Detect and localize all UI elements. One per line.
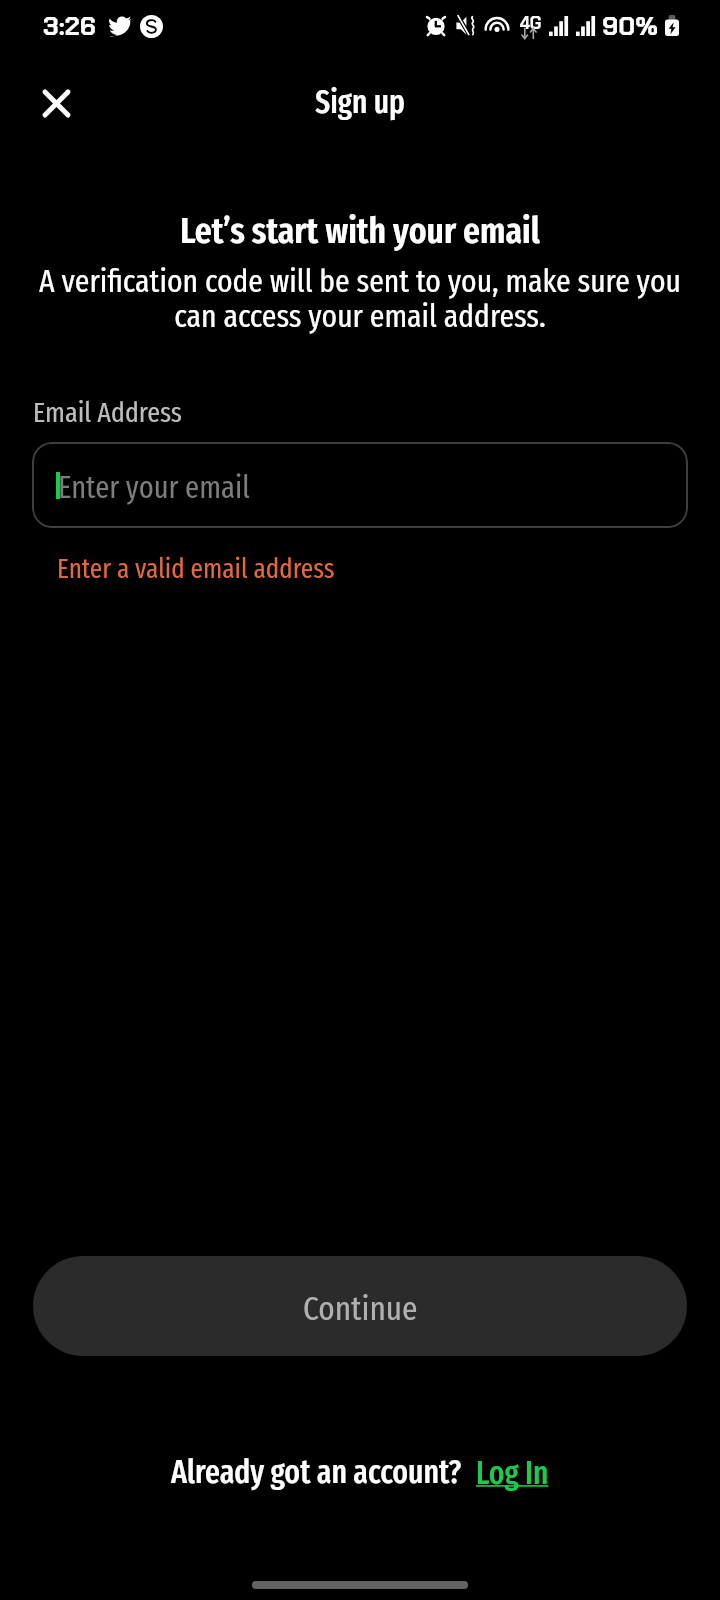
staticText: Let’s start with your email [0,209,720,253]
button[interactable]: Continue [33,1256,687,1356]
button[interactable]: Close [32,78,80,126]
staticText: Already got an account? [171,1453,462,1492]
button[interactable]: Log In [476,1454,549,1492]
staticText: Enter a valid email address [57,552,335,585]
staticText: Enter your email [58,469,250,506]
staticText: A verification code will be sent to you,… [34,262,686,335]
staticText: 90% [602,9,659,43]
staticText: 3:26 [43,9,96,43]
staticText: Email Address [33,396,182,430]
staticText: 4G [520,12,542,34]
staticText: Continue [303,1288,418,1329]
staticText: Log In [476,1454,549,1492]
staticText: Sign up [0,83,720,121]
button[interactable]: Enter your email [32,442,688,528]
